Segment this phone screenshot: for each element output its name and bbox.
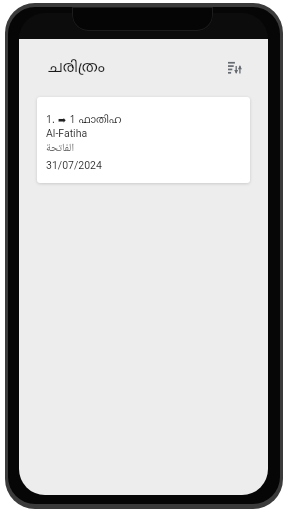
button[interactable]: Sort — [222, 55, 250, 81]
staticText: الفاتحة — [46, 139, 75, 158]
button[interactable]: 1. ➡ 1 ഫാതിഹ — [37, 97, 250, 183]
staticText: 31/07/2024 — [46, 159, 102, 171]
staticText: 1. ➡ 1 ഫാതിഹ — [46, 113, 122, 128]
staticText: ചരിത്രം — [48, 58, 105, 78]
staticText: Al-Fatiha — [46, 127, 88, 139]
